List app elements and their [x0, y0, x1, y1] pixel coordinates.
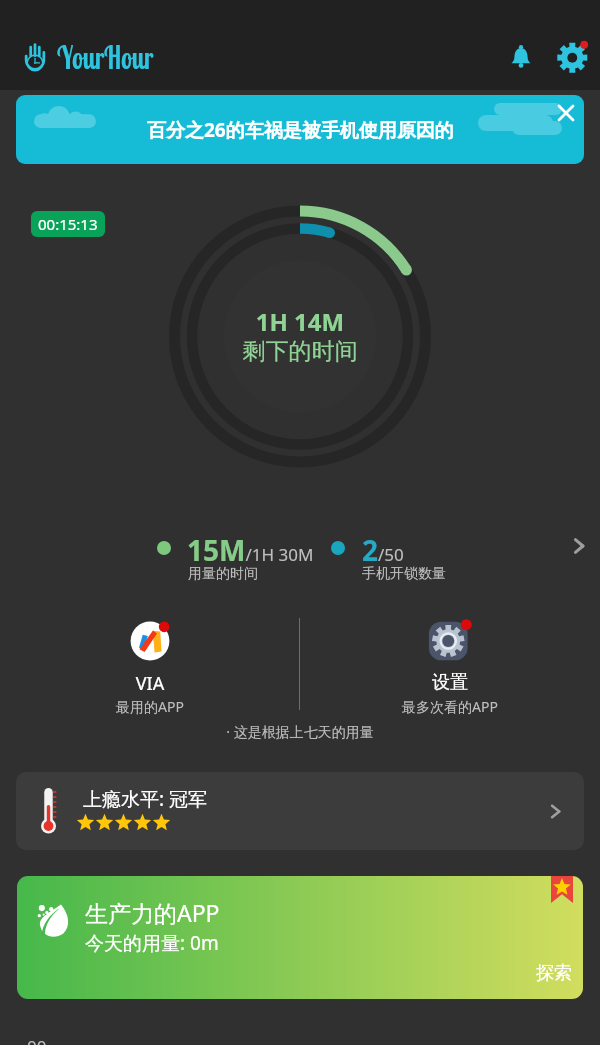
button[interactable]: 上瘾水平: 冠军 [16, 772, 584, 850]
staticText: 最多次看的APP [320, 697, 580, 716]
staticText: YourHour [57, 37, 153, 77]
staticText: 剩下的时间 [0, 337, 600, 366]
button[interactable]: YourHour logo [22, 40, 48, 75]
staticText: 2/50 [362, 531, 404, 569]
staticText: 百分之26的车祸是被手机使用原因的 [147, 117, 454, 143]
staticText: 上瘾水平: 冠军 [83, 786, 208, 812]
staticText: 00 [27, 1035, 47, 1045]
staticText: 生产力的APP [85, 897, 220, 928]
button[interactable]: 设置 [320, 612, 580, 717]
button[interactable]: Close banner [549, 96, 583, 130]
button[interactable]: 15M/1H 30M [0, 514, 600, 586]
staticText: 1H 14M [0, 305, 600, 338]
button[interactable]: Settings [554, 36, 594, 76]
button[interactable]: 00:15:13 [31, 211, 105, 237]
button[interactable]: VIA [20, 612, 280, 717]
staticText: 手机开锁数量 [362, 565, 446, 583]
staticText: 今天的用量: 0m [85, 930, 219, 956]
staticText: VIA [20, 671, 280, 696]
staticText: · 这是根据上七天的用量 [0, 722, 600, 741]
button[interactable]: 生产力的APP [17, 876, 583, 999]
staticText: 设置 [320, 671, 580, 694]
button[interactable]: 百分之26的车祸是被手机使用原因的 [16, 95, 584, 164]
staticText: 00:15:13 [38, 214, 98, 234]
staticText: 最用的APP [20, 697, 280, 716]
staticText: 用量的时间 [188, 565, 258, 583]
button[interactable]: 探索 [536, 962, 572, 985]
staticText: 15M/1H 30M [187, 531, 314, 569]
button[interactable]: Notifications [501, 37, 541, 77]
